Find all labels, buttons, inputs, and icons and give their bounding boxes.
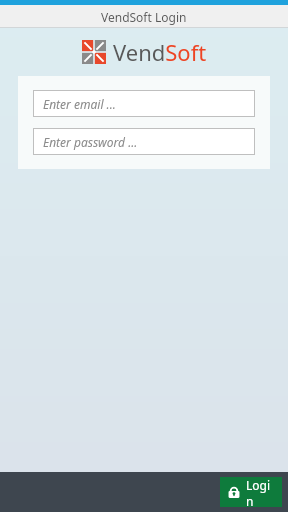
button[interactable]: Enter email ... xyxy=(33,90,255,117)
staticText: VendSoft Login xyxy=(101,9,187,25)
button[interactable]: Login xyxy=(220,477,282,507)
staticText: Login xyxy=(246,477,275,507)
other: Login xyxy=(227,485,241,499)
staticText: VendSoft xyxy=(113,37,207,67)
staticText: Enter password ... xyxy=(43,134,138,150)
button[interactable]: Enter password ... xyxy=(33,128,255,155)
staticText: Enter email ... xyxy=(43,96,116,112)
